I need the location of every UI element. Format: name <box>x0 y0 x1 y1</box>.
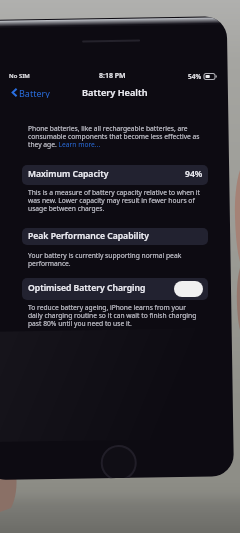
staticText: Battery Health <box>82 86 148 99</box>
staticText: To reduce battery ageing, iPhone learns … <box>28 303 202 328</box>
staticText: No SIM <box>9 72 30 80</box>
button[interactable]: Maximum Capacity <box>22 165 208 185</box>
staticText: 8:18 PM <box>99 71 126 81</box>
staticText: Phone batteries, like all rechargeable b… <box>28 124 202 149</box>
staticText: Battery <box>19 87 50 98</box>
button[interactable]: Optimised Battery Charging switch, on <box>174 281 203 297</box>
staticText: Optimised Battery Charging <box>28 282 146 294</box>
staticText: This is a measure of battery capacity re… <box>28 188 202 213</box>
staticText: Your battery is currently supporting nor… <box>28 251 202 268</box>
button[interactable]: Battery <box>4 85 54 100</box>
staticText: 54% <box>188 72 202 81</box>
button[interactable]: Peak Performance Capability <box>22 228 208 245</box>
staticText: Peak Performance Capability <box>28 230 150 242</box>
staticText: 94% <box>185 168 203 180</box>
staticText: Maximum Capacity <box>28 168 109 180</box>
button[interactable]: Optimised Battery Charging <box>22 278 208 300</box>
